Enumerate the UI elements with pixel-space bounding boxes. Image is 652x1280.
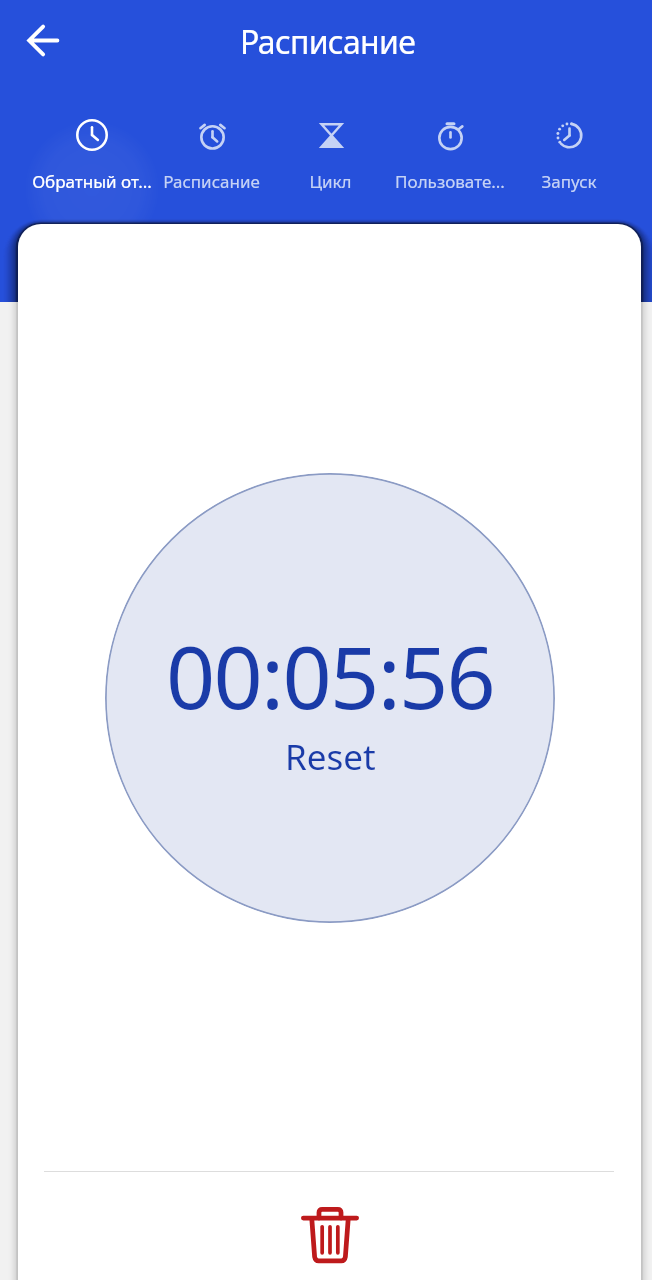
button[interactable]: Запуск	[509, 88, 628, 193]
staticText: Пользовате...	[395, 170, 505, 193]
staticText: Обратный от...	[32, 170, 152, 193]
staticText: 00:05:56	[166, 617, 495, 734]
button[interactable]: 00:05:56	[105, 473, 555, 923]
staticText: Расписание	[163, 170, 260, 193]
button[interactable]: Расписание	[152, 88, 271, 193]
staticText: Расписание	[240, 20, 416, 64]
button[interactable]: Back	[14, 12, 70, 68]
button[interactable]: Пользовате...	[390, 88, 509, 193]
staticText: Запуск	[541, 170, 597, 193]
button[interactable]: Delete	[292, 1196, 368, 1272]
staticText: Reset	[285, 733, 376, 781]
button[interactable]: Цикл	[271, 88, 390, 193]
button[interactable]: Обратный от...	[32, 88, 152, 193]
staticText: Цикл	[309, 170, 352, 193]
